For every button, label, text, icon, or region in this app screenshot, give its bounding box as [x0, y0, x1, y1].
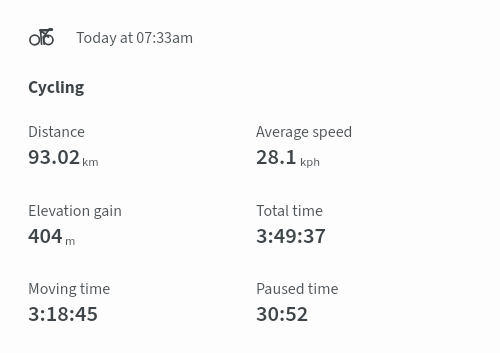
staticText: 28.1 [256, 141, 297, 173]
staticText: Moving time [28, 278, 111, 301]
staticText: km [82, 153, 99, 171]
staticText: 404 [28, 220, 63, 252]
staticText: Cycling [28, 75, 85, 100]
staticText: Today at 07:33am [76, 27, 194, 50]
staticText: Total time [256, 200, 323, 223]
staticText: 3:18:45 [28, 298, 99, 330]
staticText: Average speed [256, 121, 353, 144]
button[interactable]: Cycling activity [28, 26, 56, 47]
staticText: Paused time [256, 278, 339, 301]
staticText: kph [300, 153, 320, 171]
staticText: m [65, 232, 76, 250]
staticText: Elevation gain [28, 200, 123, 223]
staticText: 93.02 [28, 141, 81, 173]
staticText: Distance [28, 121, 85, 144]
staticText: 3:49:37 [256, 220, 327, 252]
staticText: 30:52 [256, 298, 309, 330]
